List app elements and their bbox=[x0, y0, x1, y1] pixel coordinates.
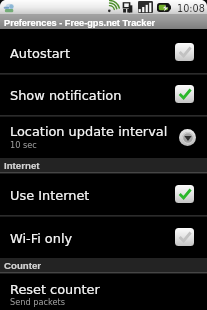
staticText: 10 sec bbox=[10, 140, 37, 150]
button[interactable]: Reset counter bbox=[0, 274, 207, 310]
button[interactable]: Show notification bbox=[0, 75, 207, 115]
staticText: Counter bbox=[4, 260, 42, 271]
staticText: Location update interval bbox=[10, 124, 168, 139]
button[interactable]: Location update interval bbox=[0, 117, 207, 158]
staticText: Reset counter bbox=[10, 282, 100, 297]
button[interactable]: Autostart bbox=[0, 29, 207, 73]
staticText: 10:08 bbox=[177, 3, 205, 14]
staticText: Use Internet bbox=[10, 188, 90, 203]
button[interactable]: Wi-Fi only bbox=[0, 217, 207, 258]
staticText: Autostart bbox=[10, 46, 70, 61]
staticText: Preferences - Free-gps.net Tracker bbox=[4, 18, 156, 28]
staticText: Send packets bbox=[10, 297, 65, 307]
staticText: Show notification bbox=[10, 88, 122, 103]
staticText: Wi-Fi only bbox=[10, 231, 73, 246]
other: Change interval bbox=[179, 129, 196, 146]
button[interactable]: Use Internet bbox=[0, 174, 207, 215]
staticText: Internet bbox=[4, 160, 40, 171]
